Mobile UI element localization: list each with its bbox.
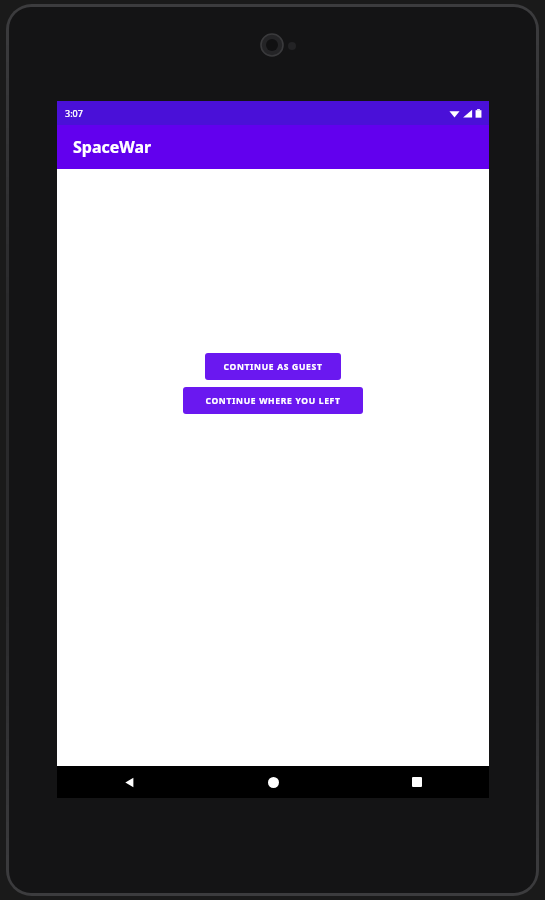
- staticText: 3:07: [65, 107, 83, 119]
- button[interactable]: CONTINUE AS GUEST: [205, 353, 341, 380]
- button[interactable]: Back: [57, 766, 201, 798]
- staticText: CONTINUE WHERE YOU LEFT: [205, 395, 341, 407]
- staticText: SpaceWar: [73, 136, 152, 158]
- button[interactable]: Home: [201, 766, 345, 798]
- button[interactable]: CONTINUE WHERE YOU LEFT: [183, 387, 363, 414]
- staticText: CONTINUE AS GUEST: [223, 361, 323, 373]
- button[interactable]: Recent apps: [345, 766, 489, 798]
